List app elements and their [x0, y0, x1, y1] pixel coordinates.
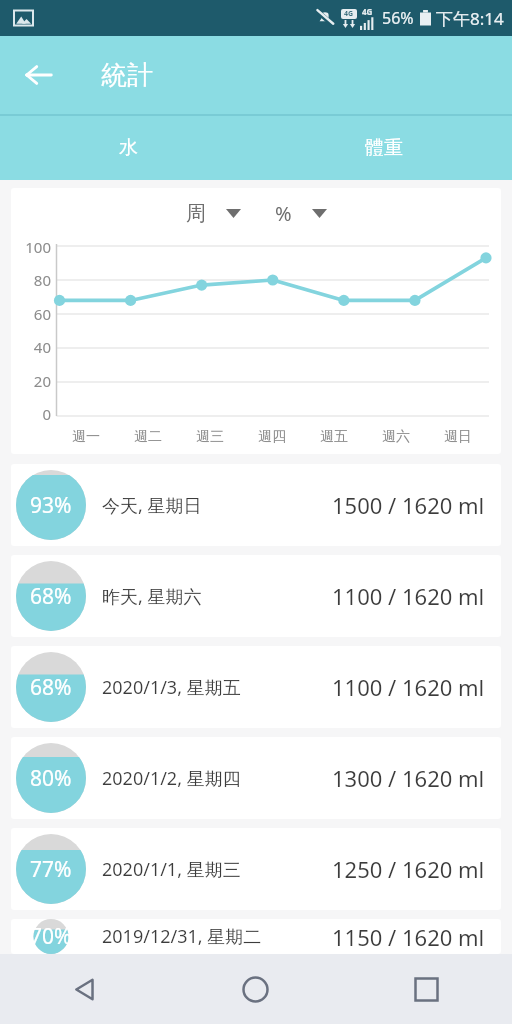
staticText: 1100 / 1620 ml — [332, 581, 485, 611]
button[interactable]: 周 — [186, 201, 241, 226]
staticText: 0 — [42, 404, 51, 424]
button[interactable]: % — [275, 200, 327, 227]
staticText: 2020/1/1, 星期三 — [102, 857, 241, 882]
staticText: 2020/1/2, 星期四 — [102, 766, 241, 791]
staticText: 70% — [30, 922, 72, 951]
button[interactable]: 68% — [11, 555, 501, 637]
staticText: % — [275, 200, 292, 227]
staticText: 4G — [362, 6, 373, 17]
staticText: 93% — [30, 491, 72, 520]
staticText: 周 — [186, 201, 206, 226]
button[interactable]: Back — [12, 48, 66, 102]
staticText: 1250 / 1620 ml — [332, 854, 485, 884]
staticText: 2020/1/3, 星期五 — [102, 675, 241, 700]
staticText: 60 — [33, 304, 51, 324]
button[interactable]: 80% — [11, 737, 501, 819]
staticText: 20 — [33, 371, 51, 391]
button[interactable]: 70% — [11, 919, 501, 954]
button[interactable]: Back — [0, 954, 170, 1024]
button[interactable]: 93% — [11, 464, 501, 546]
staticText: 1500 / 1620 ml — [332, 490, 485, 520]
staticText: 1150 / 1620 ml — [332, 922, 485, 952]
staticText: 100 — [25, 237, 51, 257]
button[interactable]: Recents — [341, 954, 512, 1024]
staticText: 週六 — [382, 428, 410, 446]
staticText: 1300 / 1620 ml — [332, 763, 485, 793]
button[interactable]: 周 — [11, 188, 501, 454]
staticText: 今天, 星期日 — [102, 493, 202, 518]
staticText: 週三 — [196, 428, 224, 446]
button[interactable]: Home — [170, 954, 341, 1024]
staticText: 2019/12/31, 星期二 — [102, 924, 262, 949]
staticText: 週五 — [320, 428, 348, 446]
staticText: 80% — [30, 764, 72, 793]
button[interactable]: 68% — [11, 646, 501, 728]
staticText: 1100 / 1620 ml — [332, 672, 485, 702]
button[interactable]: 77% — [11, 828, 501, 910]
staticText: 下午8:14 — [436, 7, 504, 30]
staticText: 80 — [33, 270, 51, 290]
staticText: 56% — [382, 7, 414, 29]
staticText: 40 — [33, 337, 51, 357]
staticText: 統計 — [101, 59, 153, 92]
staticText: 週日 — [444, 428, 472, 446]
staticText: 水 — [119, 136, 138, 160]
button[interactable]: 體重 — [256, 116, 512, 180]
staticText: 體重 — [365, 136, 403, 160]
staticText: 週二 — [134, 428, 162, 446]
staticText: 週四 — [258, 428, 286, 446]
button[interactable]: 水 — [0, 116, 256, 180]
staticText: 68% — [30, 582, 72, 611]
staticText: 週一 — [72, 428, 100, 446]
staticText: 77% — [30, 855, 72, 884]
staticText: 4G — [344, 9, 354, 19]
staticText: 68% — [30, 673, 72, 702]
staticText: 昨天, 星期六 — [102, 584, 202, 609]
